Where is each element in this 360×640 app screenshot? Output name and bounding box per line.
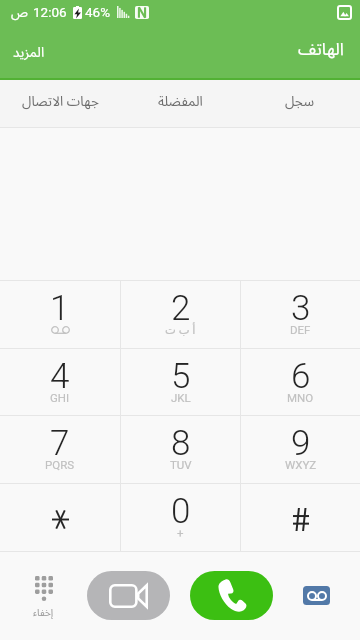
button[interactable]: Call — [190, 571, 273, 620]
staticText: GHI — [50, 391, 70, 404]
staticText: 7 — [50, 423, 70, 464]
button[interactable]: المفضلة — [120, 80, 240, 127]
staticText: WXYZ — [285, 458, 317, 471]
staticText: جهات الاتصال — [22, 92, 99, 110]
staticText: 0 — [171, 491, 191, 532]
staticText: الهاتف — [298, 37, 344, 60]
button[interactable]: 6 — [241, 349, 360, 415]
button[interactable]: 9 — [241, 416, 360, 483]
staticText: المفضلة — [158, 92, 203, 110]
other: Screenshot — [338, 6, 351, 19]
staticText: أ ب ت — [165, 323, 196, 336]
staticText: 6 — [291, 356, 311, 397]
button[interactable]: جهات الاتصال — [0, 80, 120, 127]
staticText: 9 — [291, 423, 311, 464]
staticText: MNO — [287, 391, 314, 404]
staticText: + — [177, 526, 184, 539]
staticText: 46% — [85, 4, 111, 20]
staticText: 12:06 — [33, 4, 67, 20]
staticText: DEF — [290, 323, 311, 336]
button[interactable]: 2 — [121, 281, 240, 348]
staticText: 4 — [50, 356, 70, 397]
staticText: 5 — [171, 356, 191, 397]
staticText: ص — [11, 3, 28, 21]
staticText: سجل — [285, 92, 315, 110]
button[interactable]: المزيد — [7, 37, 51, 67]
button[interactable]: 8 — [121, 416, 240, 483]
staticText: JKL — [171, 391, 191, 404]
button[interactable]: Voicemail — [273, 571, 360, 620]
button[interactable]: 0 — [121, 484, 240, 551]
staticText: المزيد — [13, 43, 45, 61]
staticText: 3 — [291, 288, 311, 329]
button[interactable]: 5 — [121, 349, 240, 415]
button[interactable]: 4 — [0, 349, 120, 415]
button[interactable] — [241, 484, 360, 551]
staticText: 2 — [171, 288, 191, 329]
staticText: إخفاء — [33, 605, 54, 619]
button[interactable]: 7 — [0, 416, 120, 483]
staticText: 1 — [50, 288, 70, 329]
button[interactable]: Video call — [87, 571, 170, 620]
button[interactable] — [0, 484, 120, 551]
button[interactable]: سجل — [240, 80, 360, 127]
button[interactable]: إخفاء — [0, 551, 86, 640]
button[interactable]: 3 — [241, 281, 360, 348]
staticText: TUV — [170, 458, 192, 471]
staticText: PQRS — [45, 458, 75, 471]
staticText: 8 — [171, 423, 191, 464]
button[interactable]: 1 — [0, 281, 120, 348]
